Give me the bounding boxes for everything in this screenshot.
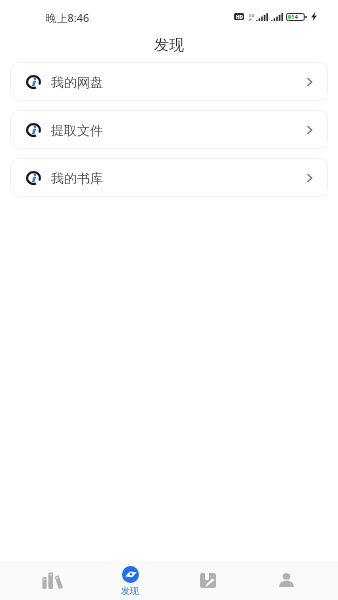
button[interactable]: 书架 (14, 561, 91, 600)
staticText: 发现 (154, 36, 184, 55)
button[interactable]: 发现 (91, 561, 169, 600)
staticText: 14 (291, 13, 298, 20)
staticText: 我的书库 (51, 170, 103, 186)
staticText: HD (236, 14, 243, 20)
button[interactable]: 我的网盘 (10, 62, 328, 101)
staticText: 我的网盘 (51, 74, 103, 90)
staticText: 晚上8:46 (46, 10, 90, 25)
staticText: 提取文件 (51, 122, 103, 138)
staticText: 5G (249, 13, 255, 19)
button[interactable]: 下载 (169, 561, 247, 600)
staticText: 发现 (121, 585, 139, 596)
button[interactable]: 提取文件 (10, 110, 328, 149)
button[interactable]: 我的 (247, 561, 325, 600)
button[interactable]: 我的书库 (10, 158, 328, 197)
